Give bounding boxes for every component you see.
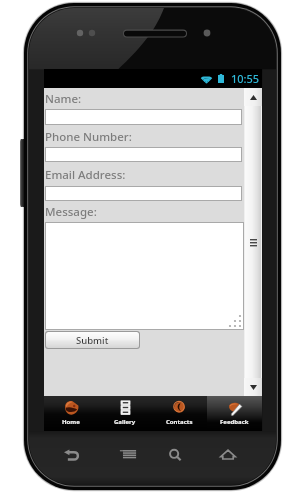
staticText: Home [62, 418, 80, 426]
staticText: Contacts [166, 418, 193, 426]
button[interactable]: Home [206, 438, 250, 472]
button[interactable]: Gallery [98, 396, 152, 431]
button[interactable]: Scroll down [244, 378, 262, 396]
button[interactable]: Scrollbar thumb [245, 106, 261, 378]
button[interactable]: Menu [106, 437, 150, 471]
button[interactable]: Submit [46, 332, 139, 348]
staticText: Feedback [220, 418, 249, 426]
staticText: Phone Number: [45, 129, 132, 145]
button[interactable]: Home [44, 396, 98, 431]
staticText: Name: [45, 91, 82, 107]
staticText: Message: [45, 204, 97, 220]
button[interactable]: Contacts [152, 396, 207, 431]
staticText: Gallery [114, 418, 136, 426]
button[interactable]: Back [50, 438, 94, 472]
button[interactable]: Feedback [207, 396, 262, 431]
staticText: Submit [76, 334, 109, 347]
button[interactable]: Search [153, 438, 197, 472]
button[interactable]: Scroll up [244, 88, 262, 106]
staticText: Email Address: [45, 167, 126, 183]
staticText: 10:55 [231, 71, 260, 86]
